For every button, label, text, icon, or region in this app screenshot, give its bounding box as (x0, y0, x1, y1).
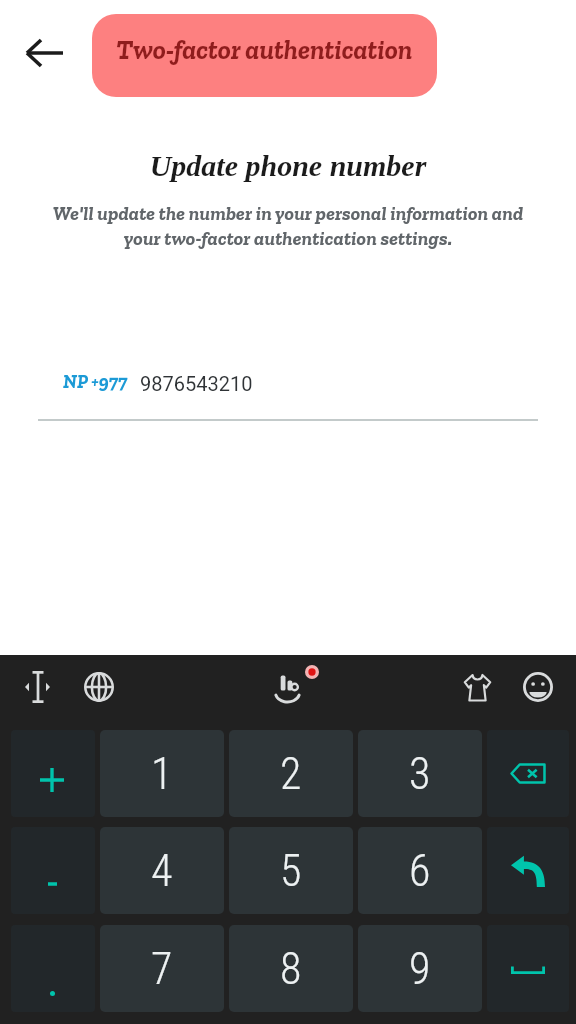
staticText: 3 (409, 748, 431, 800)
staticText: We'll update the number in your personal… (46, 202, 530, 250)
button[interactable]: 8 (229, 925, 353, 1012)
button[interactable]: 9 (358, 925, 482, 1012)
button[interactable]: Enter (487, 827, 569, 914)
staticText: 5 (280, 845, 302, 897)
staticText: 9876543210 (140, 372, 253, 395)
button[interactable]: 3 (358, 730, 482, 817)
staticText: 6 (409, 845, 431, 897)
button[interactable]: 5 (229, 827, 353, 914)
button[interactable]: - (11, 827, 95, 914)
staticText: 4 (151, 845, 173, 897)
staticText: 7 (151, 943, 173, 995)
button[interactable]: 7 (100, 925, 224, 1012)
button[interactable]: Space (487, 925, 569, 1012)
staticText: 1 (151, 748, 173, 800)
button[interactable]: Text editing (17, 663, 58, 711)
button[interactable]: Backspace (487, 730, 569, 817)
button[interactable]: Emoji (515, 664, 561, 710)
button[interactable]: Gesture typing (264, 664, 311, 710)
button[interactable]: Back (19, 36, 68, 70)
button[interactable]: Change language (76, 664, 122, 710)
staticText: NP +977 (63, 370, 128, 393)
button[interactable]: Two-factor authentication (92, 14, 437, 97)
button[interactable]: 2 (229, 730, 353, 817)
button[interactable]: 4 (100, 827, 224, 914)
staticText: 8 (280, 943, 302, 995)
button[interactable]: + (11, 730, 95, 817)
staticText: 2 (280, 748, 302, 800)
button[interactable]: . (11, 925, 95, 1012)
button[interactable]: 6 (358, 827, 482, 914)
staticText: 9 (409, 943, 431, 995)
button[interactable]: 1 (100, 730, 224, 817)
staticText: Update phone number (0, 149, 576, 182)
button[interactable]: Themes (455, 664, 500, 710)
staticText: Two-factor authentication (116, 34, 413, 66)
